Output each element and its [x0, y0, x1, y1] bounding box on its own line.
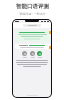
button[interactable]: Submit — [37, 51, 42, 56]
button[interactable]: Search — [23, 24, 41, 27]
button[interactable] — [15, 44, 49, 49]
staticText: 智能评测 · 一秒出分 — [19, 12, 46, 16]
staticText: 智能口语评测 — [16, 3, 49, 10]
button[interactable]: Record — [22, 51, 27, 56]
button[interactable]: Bookmark tab — [49, 31, 51, 34]
button[interactable]: Bookmark tab two — [49, 46, 51, 49]
button[interactable]: Action — [15, 30, 49, 42]
button[interactable]: Play — [30, 51, 35, 56]
